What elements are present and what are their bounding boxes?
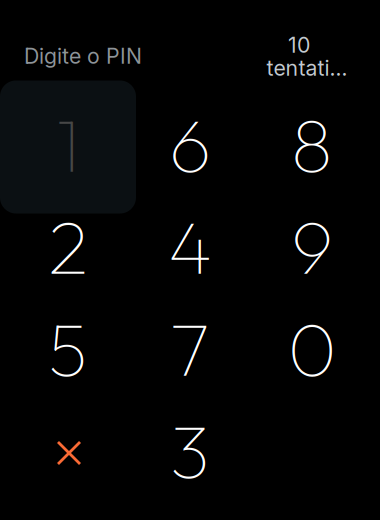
button[interactable]: 1 bbox=[7, 93, 129, 195]
staticText: 2 bbox=[48, 199, 88, 293]
button[interactable]: 6 bbox=[129, 93, 251, 195]
button[interactable]: 9 bbox=[251, 195, 373, 297]
staticText: tentati… bbox=[266, 55, 347, 81]
staticText: 1 bbox=[56, 97, 80, 191]
staticText: 6 bbox=[169, 97, 211, 191]
staticText: Digite o PIN bbox=[24, 43, 142, 69]
staticText: 5 bbox=[48, 301, 88, 395]
staticText: 3 bbox=[170, 403, 210, 497]
button[interactable]: 2 bbox=[7, 195, 129, 297]
button[interactable]: 3 bbox=[129, 399, 251, 501]
staticText: 9 bbox=[291, 199, 333, 293]
button[interactable]: 7 bbox=[129, 297, 251, 399]
staticText: 0 bbox=[287, 301, 336, 395]
staticText: 10 bbox=[288, 32, 310, 58]
button[interactable]: Apagar bbox=[8, 402, 130, 504]
button[interactable]: 5 bbox=[7, 297, 129, 399]
button[interactable]: 8 bbox=[251, 93, 373, 195]
button[interactable]: 0 bbox=[251, 297, 373, 399]
staticText: 4 bbox=[168, 199, 212, 293]
staticText: 7 bbox=[170, 301, 210, 395]
staticText: 8 bbox=[291, 97, 333, 191]
button[interactable]: 4 bbox=[129, 195, 251, 297]
